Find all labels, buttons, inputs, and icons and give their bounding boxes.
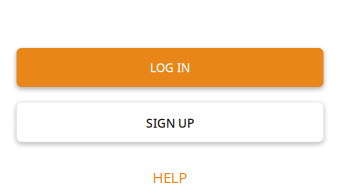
button[interactable]: SIGN UP	[16, 102, 323, 142]
staticText: LOG IN	[150, 59, 190, 75]
staticText: SIGN UP	[146, 115, 194, 131]
button[interactable]: HELP	[141, 163, 199, 191]
button[interactable]: LOG IN	[16, 48, 323, 87]
staticText: HELP	[153, 167, 187, 187]
